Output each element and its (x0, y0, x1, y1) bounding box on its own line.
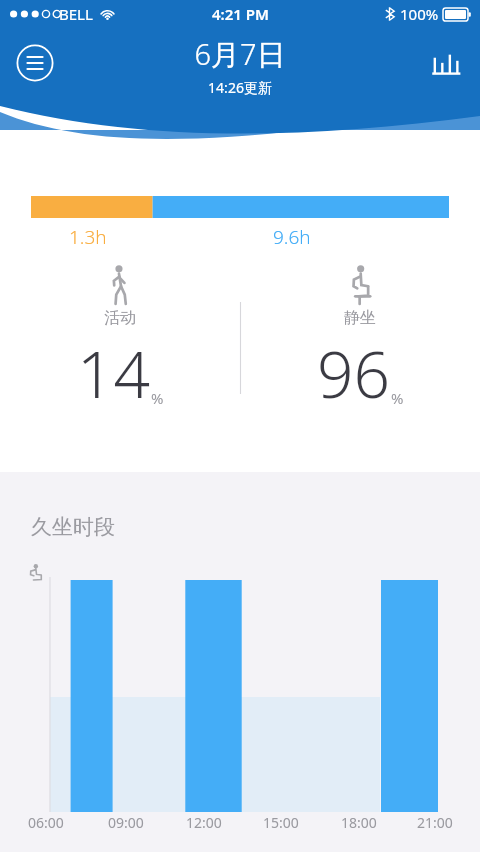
staticText: 96 (317, 330, 391, 417)
staticText: 14:26更新 (208, 78, 272, 97)
staticText: 9.6h (273, 224, 311, 250)
staticText: 14 (77, 330, 151, 417)
staticText: 静坐 (344, 308, 376, 328)
staticText: BELL (59, 4, 93, 24)
staticText: 久坐时段 (31, 514, 115, 540)
button[interactable]: Statistics (430, 48, 462, 80)
staticText: % (151, 388, 164, 408)
staticText: 18:00 (341, 813, 377, 832)
staticText: 活动 (104, 308, 136, 328)
staticText: 15:00 (263, 813, 299, 832)
staticText: 100% (400, 4, 439, 24)
staticText: 09:00 (108, 813, 144, 832)
button[interactable]: 静坐 (240, 264, 480, 417)
button[interactable]: Menu (16, 44, 54, 82)
staticText: 06:00 (28, 813, 64, 832)
staticText: 6月7日 (194, 34, 286, 74)
staticText: 4:21 PM (212, 4, 269, 24)
staticText: 1.3h (69, 224, 107, 250)
button[interactable]: 活动 (0, 264, 240, 417)
staticText: 21:00 (417, 813, 453, 832)
staticText: 12:00 (186, 813, 222, 832)
staticText: % (391, 388, 404, 408)
